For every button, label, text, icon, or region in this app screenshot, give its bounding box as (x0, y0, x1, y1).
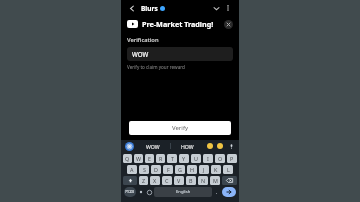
button[interactable]: P (227, 154, 237, 163)
staticText: Z (142, 177, 146, 184)
button[interactable]: WOW (127, 47, 233, 61)
button[interactable]: Verify (129, 121, 231, 135)
staticText: X (153, 177, 157, 184)
button[interactable]: Emoji (217, 143, 223, 149)
staticText: P (230, 155, 234, 162)
button[interactable]: N (198, 176, 208, 185)
button[interactable]: I (203, 154, 213, 163)
staticText: WOW (132, 50, 149, 58)
staticText: English (176, 189, 191, 195)
button[interactable]: Video (127, 20, 138, 28)
button[interactable]: S (139, 165, 149, 174)
staticText: D (154, 166, 158, 173)
button[interactable]: Settings (137, 187, 145, 197)
button[interactable]: Z (139, 176, 148, 185)
staticText: Verification (127, 36, 159, 44)
button[interactable]: Google Lens (125, 142, 134, 151)
button[interactable]: C (162, 176, 172, 185)
button[interactable]: Expand (210, 2, 222, 14)
staticText: T (171, 155, 174, 162)
staticText: Blurs (141, 4, 158, 13)
staticText: . (216, 189, 218, 196)
button[interactable]: K (211, 165, 221, 174)
button[interactable]: ?123 (124, 187, 136, 197)
button[interactable]: J (199, 165, 209, 174)
button[interactable]: A (127, 165, 137, 174)
button[interactable]: Voice input (227, 142, 235, 150)
staticText: WOW (146, 143, 160, 150)
button[interactable]: WOW (143, 143, 163, 150)
button[interactable]: G (175, 165, 185, 174)
staticText: S (143, 166, 146, 173)
staticText: N (201, 177, 206, 184)
staticText: K (214, 166, 218, 173)
button[interactable]: Back (126, 2, 138, 14)
button[interactable]: L (223, 165, 233, 174)
button[interactable]: HOW (178, 143, 197, 150)
staticText: U (194, 155, 198, 162)
button[interactable]: Emoji (207, 143, 213, 149)
staticText: R (159, 155, 163, 162)
button[interactable]: R (156, 154, 165, 163)
button[interactable]: F (163, 165, 173, 174)
staticText: Verify (172, 124, 189, 132)
button[interactable]: U (191, 154, 201, 163)
button[interactable]: Y (179, 154, 189, 163)
staticText: Y (182, 155, 186, 162)
button[interactable]: E (145, 154, 154, 163)
staticText: E (148, 155, 151, 162)
staticText: H (190, 166, 194, 173)
button[interactable]: W (134, 154, 143, 163)
staticText: I (207, 155, 209, 162)
button[interactable]: D (151, 165, 161, 174)
staticText: O (218, 155, 223, 162)
button[interactable]: Emoji keyboard (145, 187, 153, 197)
staticText: HOW (181, 143, 194, 150)
button[interactable]: H (187, 165, 197, 174)
button[interactable]: T (167, 154, 177, 163)
staticText: F (167, 166, 170, 173)
button[interactable]: Shift (123, 176, 137, 185)
staticText: J (203, 166, 205, 173)
button[interactable]: . (213, 187, 221, 197)
button[interactable]: M (210, 176, 220, 185)
staticText: Verify to claim your reward (127, 64, 185, 70)
staticText: G (178, 166, 182, 173)
button[interactable]: Close (224, 20, 233, 29)
staticText: M (213, 177, 218, 184)
button[interactable]: Enter (222, 187, 236, 197)
button[interactable]: English (154, 187, 212, 197)
staticText: L (227, 166, 230, 173)
button[interactable]: Backspace (222, 176, 237, 185)
staticText: Pre-Market Trading! (142, 19, 214, 29)
staticText: Q (125, 155, 130, 162)
staticText: B (189, 177, 193, 184)
staticText: C (165, 177, 169, 184)
button[interactable]: O (215, 154, 225, 163)
button[interactable]: More options (222, 2, 234, 14)
button[interactable]: V (174, 176, 184, 185)
staticText: V (177, 177, 181, 184)
staticText: W (136, 155, 142, 162)
button[interactable]: Q (123, 154, 132, 163)
button[interactable]: B (186, 176, 196, 185)
staticText: A (130, 166, 134, 173)
button[interactable]: X (150, 176, 160, 185)
staticText: ?123 (125, 189, 135, 195)
